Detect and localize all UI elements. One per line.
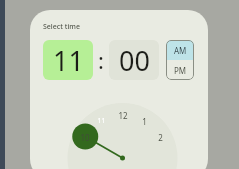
staticText: 2 — [158, 132, 163, 143]
staticText: AM — [174, 45, 187, 56]
button[interactable]: Clock dial — [30, 90, 208, 169]
staticText: 1 — [142, 116, 147, 127]
staticText: 10 — [80, 132, 90, 143]
button[interactable]: PM — [166, 60, 194, 80]
staticText: 11 — [53, 42, 84, 79]
staticText: 12 — [118, 110, 128, 121]
button[interactable]: 00 — [109, 40, 159, 80]
button[interactable]: 11 — [43, 40, 93, 80]
staticText: 11 — [97, 116, 106, 126]
staticText: 00 — [119, 42, 150, 79]
button[interactable]: AM — [166, 40, 194, 60]
staticText: : — [98, 45, 104, 75]
staticText: Select time — [43, 22, 80, 32]
staticText: PM — [174, 65, 187, 76]
